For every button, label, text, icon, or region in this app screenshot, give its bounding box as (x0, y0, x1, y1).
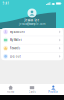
button[interactable]: Cards (21, 84, 43, 95)
button[interactable]: Rewards (1, 44, 63, 52)
staticText: jessica@example.com (19, 22, 45, 26)
staticText: Cards (28, 90, 35, 94)
button[interactable]: Profile (43, 84, 64, 95)
staticText: Jessica Lee (24, 18, 39, 22)
staticText: My Account (10, 30, 25, 34)
staticText: Profile (48, 90, 58, 94)
staticText: Home (7, 90, 15, 94)
staticText: 9:41 (2, 2, 9, 5)
button[interactable]: Home (0, 84, 21, 95)
button[interactable]: My Account (1, 28, 63, 36)
button[interactable]: Log out (1, 52, 63, 60)
staticText: Rewards (10, 46, 20, 50)
button[interactable]: My Wallet (1, 36, 63, 44)
staticText: Log out (10, 55, 21, 58)
staticText: My Wallet (10, 38, 22, 42)
